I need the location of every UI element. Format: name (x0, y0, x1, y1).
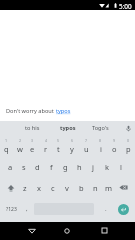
button[interactable]: Hide keyboard (23, 222, 41, 239)
staticText: 3 (31, 138, 34, 143)
button[interactable]: n (88, 177, 102, 198)
staticText: l (120, 162, 122, 172)
staticText: 0 (127, 138, 130, 143)
button[interactable]: typos (48, 121, 88, 135)
staticText: 4 (45, 138, 48, 143)
button[interactable]: 5 (52, 135, 65, 156)
staticText: w (17, 144, 23, 154)
button[interactable]: 9 (107, 135, 121, 156)
button[interactable]: b (74, 177, 88, 198)
button[interactable]: Shift (4, 177, 18, 198)
staticText: n (93, 183, 98, 193)
staticText: x (37, 183, 41, 193)
staticText: j (92, 162, 94, 172)
button[interactable]: ?123 (1, 198, 22, 220)
button[interactable]: s (17, 156, 30, 177)
button[interactable]: Togo's (80, 121, 120, 135)
staticText: , (26, 205, 28, 213)
button[interactable]: to his (12, 121, 52, 135)
button[interactable]: k (100, 156, 114, 177)
button[interactable]: l (114, 156, 128, 177)
button[interactable]: Voice input (121, 121, 135, 135)
staticText: 6 (71, 138, 74, 143)
staticText: t (57, 144, 60, 154)
button[interactable]: Backspace (116, 177, 130, 198)
button[interactable]: 6 (65, 135, 79, 156)
staticText: d (35, 162, 40, 172)
staticText: q (4, 144, 9, 154)
staticText: c (51, 183, 55, 193)
button[interactable]: z (18, 177, 32, 198)
staticText: 2 (19, 138, 22, 143)
button[interactable]: h (72, 156, 86, 177)
staticText: s (22, 162, 26, 172)
button[interactable]: 4 (39, 135, 52, 156)
staticText: 8 (99, 138, 102, 143)
button[interactable]: v (60, 177, 74, 198)
button[interactable]: Enter (112, 198, 134, 220)
staticText: v (65, 183, 69, 193)
staticText: h (77, 162, 82, 172)
button[interactable]: 0 (121, 135, 135, 156)
staticText: e (30, 144, 35, 154)
staticText: m (105, 183, 113, 193)
staticText: g (63, 162, 68, 172)
button[interactable]: 3 (26, 135, 39, 156)
button[interactable]: c (46, 177, 60, 198)
button[interactable]: g (58, 156, 72, 177)
staticText: . (105, 205, 107, 213)
button[interactable]: , (21, 198, 33, 220)
button[interactable]: a (4, 156, 17, 177)
button[interactable]: m (102, 177, 116, 198)
staticText: u (84, 144, 89, 154)
staticText: Togo's (92, 124, 109, 132)
staticText: b (79, 183, 84, 193)
staticText: k (105, 162, 110, 172)
staticText: 5:00 (119, 2, 132, 11)
button[interactable]: j (86, 156, 100, 177)
staticText: y (70, 144, 74, 154)
button[interactable]: x (32, 177, 46, 198)
button[interactable]: 8 (93, 135, 107, 156)
staticText: a (8, 162, 13, 172)
button[interactable]: 7 (79, 135, 93, 156)
button[interactable]: f (44, 156, 58, 177)
button[interactable]: d (30, 156, 44, 177)
staticText: z (23, 183, 27, 193)
staticText: typos (56, 107, 71, 115)
staticText: r (44, 144, 48, 154)
staticText: 1 (5, 138, 8, 143)
staticText: 7 (85, 138, 88, 143)
button[interactable]: 2 (13, 135, 26, 156)
button[interactable]: Home (58, 222, 76, 239)
button[interactable]: Recent apps (95, 222, 113, 239)
staticText: f (50, 162, 53, 172)
staticText: 9 (113, 138, 116, 143)
staticText: o (112, 144, 117, 154)
staticText: to his (25, 124, 40, 132)
button[interactable]: 1 (0, 135, 13, 156)
staticText: Don't worry about (6, 107, 56, 115)
staticText: p (126, 144, 131, 154)
staticText: typos (60, 124, 76, 132)
staticText: i (100, 144, 102, 154)
staticText: ?123 (6, 206, 17, 213)
staticText: 5 (57, 138, 60, 143)
